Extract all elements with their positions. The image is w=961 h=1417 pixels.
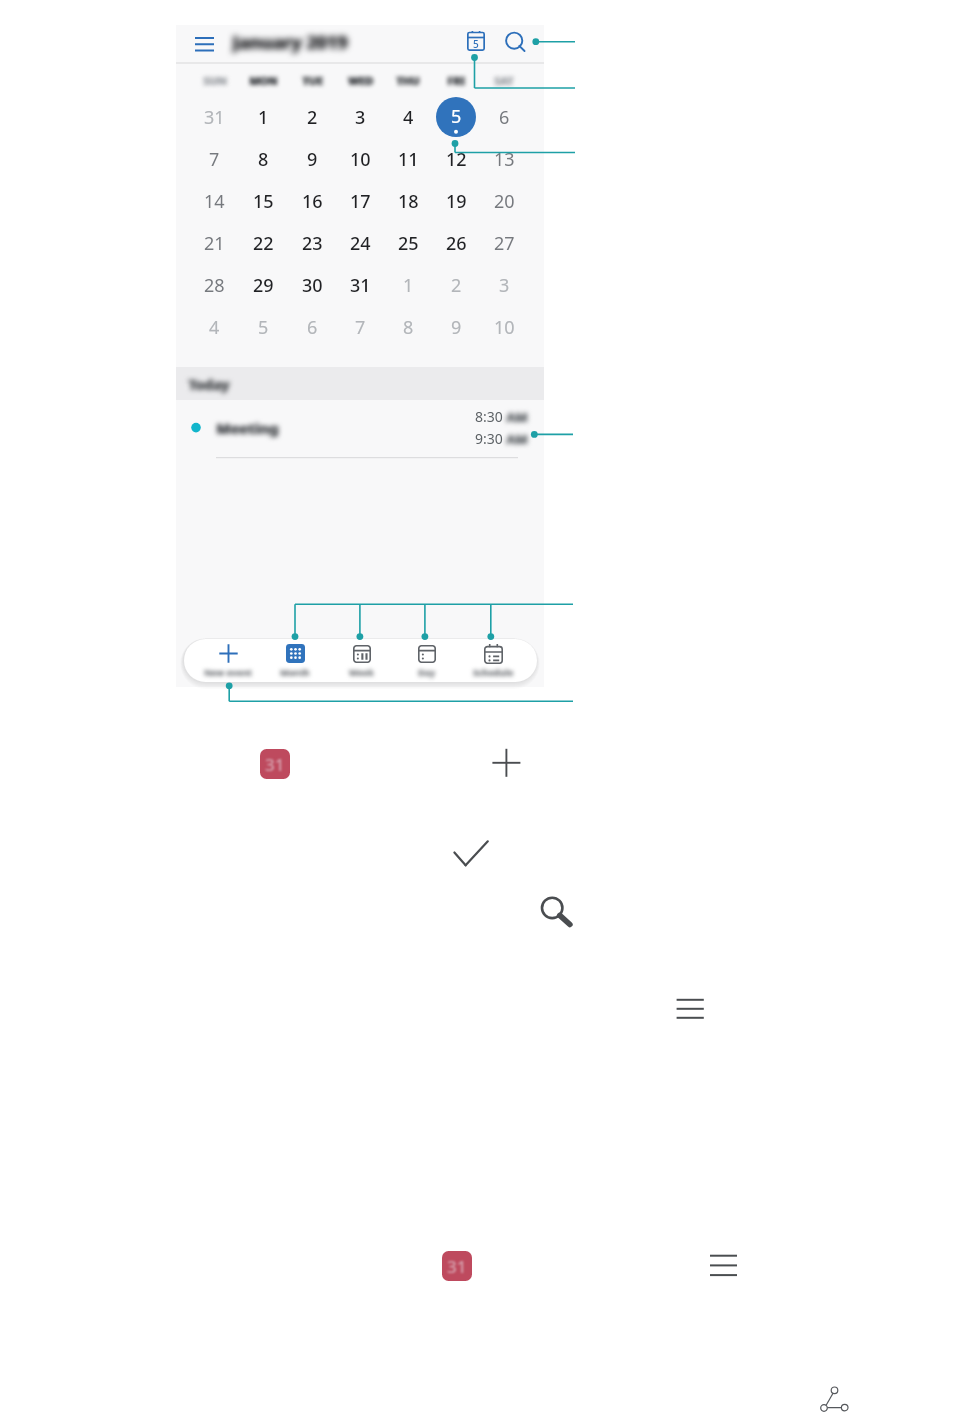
- staticText: Today: [189, 375, 231, 394]
- staticText: Meeting: [217, 418, 280, 438]
- button[interactable]: 5: [239, 306, 288, 348]
- staticText: 15: [253, 189, 274, 214]
- button[interactable]: 25: [384, 222, 432, 264]
- staticText: 30: [302, 273, 323, 298]
- button[interactable]: 11: [384, 138, 432, 180]
- button[interactable]: 3: [480, 264, 528, 306]
- staticText: 7: [209, 147, 220, 172]
- staticText: Week: [349, 666, 374, 678]
- staticText: 6: [499, 105, 510, 130]
- button[interactable]: 14: [190, 180, 239, 222]
- button[interactable]: 27: [480, 222, 528, 264]
- button[interactable]: 10: [336, 138, 384, 180]
- button[interactable]: Search: [495, 25, 533, 63]
- staticText: 12: [446, 147, 467, 172]
- staticText: AM: [506, 430, 528, 447]
- staticText: SUN: [203, 73, 227, 88]
- staticText: January 2019: [233, 30, 349, 55]
- staticText: 1: [403, 273, 414, 298]
- staticText: AM: [506, 408, 528, 425]
- button[interactable]: 1: [384, 264, 432, 306]
- button[interactable]: 13: [480, 138, 528, 180]
- button[interactable]: 8: [239, 138, 288, 180]
- button[interactable]: 3: [336, 96, 384, 138]
- staticText: 27: [494, 231, 515, 256]
- staticText: 9: [307, 147, 318, 172]
- button[interactable]: 24: [336, 222, 384, 264]
- staticText: AM: [507, 430, 529, 447]
- staticText: SUN: [204, 73, 228, 88]
- staticText: Day: [418, 666, 436, 678]
- button[interactable]: 10: [480, 306, 528, 348]
- staticText: 4: [209, 315, 220, 340]
- staticText: 13: [494, 147, 515, 172]
- staticText: New event: [204, 666, 253, 678]
- staticText: 29: [253, 273, 274, 298]
- staticText: FRI: [448, 73, 466, 88]
- staticText: 4: [403, 105, 414, 130]
- button[interactable]: 12: [432, 138, 480, 180]
- button[interactable]: Meeting: [176, 400, 544, 458]
- button[interactable]: Day: [394, 639, 460, 682]
- staticText: TUE: [303, 73, 324, 88]
- button[interactable]: 16: [288, 180, 336, 222]
- staticText: 9:30: [475, 429, 503, 448]
- staticText: Month: [280, 666, 310, 678]
- staticText: WED: [349, 73, 374, 88]
- staticText: 10: [350, 147, 371, 172]
- button[interactable]: 7: [336, 306, 384, 348]
- button[interactable]: 8: [384, 306, 432, 348]
- button[interactable]: 15: [239, 180, 288, 222]
- button[interactable]: 17: [336, 180, 384, 222]
- button[interactable]: 20: [480, 180, 528, 222]
- staticText: THU: [396, 73, 420, 88]
- button[interactable]: 23: [288, 222, 336, 264]
- staticText: Month: [280, 666, 310, 678]
- button[interactable]: 21: [190, 222, 239, 264]
- staticText: Today: [188, 375, 230, 394]
- button[interactable]: 2: [288, 96, 336, 138]
- button[interactable]: 9: [288, 138, 336, 180]
- staticText: FRI: [447, 73, 465, 88]
- button[interactable]: 1: [239, 96, 288, 138]
- button[interactable]: 5: [432, 96, 480, 138]
- staticText: WED: [348, 73, 373, 88]
- button[interactable]: 7: [190, 138, 239, 180]
- button[interactable]: 6: [288, 306, 336, 348]
- button[interactable]: 18: [384, 180, 432, 222]
- button[interactable]: 30: [288, 264, 336, 306]
- button[interactable]: 31: [190, 96, 239, 138]
- staticText: SAT: [494, 73, 514, 88]
- staticText: Week: [349, 666, 374, 678]
- button[interactable]: 9: [432, 306, 480, 348]
- button[interactable]: Menu: [176, 25, 233, 63]
- button[interactable]: Calendar app: [258, 747, 292, 781]
- button[interactable]: Week: [328, 639, 394, 682]
- staticText: 16: [302, 189, 323, 214]
- button[interactable]: 6: [480, 96, 528, 138]
- staticText: 5: [258, 315, 269, 340]
- button[interactable]: New event: [195, 639, 262, 682]
- staticText: Schedule: [473, 666, 514, 678]
- staticText: MON: [249, 73, 278, 88]
- button[interactable]: 31: [336, 264, 384, 306]
- button[interactable]: 26: [432, 222, 480, 264]
- staticText: Schedule: [473, 666, 514, 678]
- staticText: Meeting: [216, 418, 279, 438]
- staticText: 3: [499, 273, 510, 298]
- button[interactable]: 2: [432, 264, 480, 306]
- button[interactable]: 28: [190, 264, 239, 306]
- staticText: 28: [204, 273, 225, 298]
- button[interactable]: Month: [262, 639, 328, 682]
- button[interactable]: 22: [239, 222, 288, 264]
- button[interactable]: Calendar app: [440, 1249, 474, 1283]
- staticText: January 2019: [232, 30, 348, 55]
- button[interactable]: 19: [432, 180, 480, 222]
- button[interactable]: Schedule: [460, 639, 526, 682]
- button[interactable]: 4: [384, 96, 432, 138]
- button[interactable]: 4: [190, 306, 239, 348]
- button[interactable]: 29: [239, 264, 288, 306]
- button[interactable]: Jump to today: [457, 25, 495, 63]
- staticText: WED: [348, 73, 373, 88]
- staticText: 31: [350, 273, 371, 298]
